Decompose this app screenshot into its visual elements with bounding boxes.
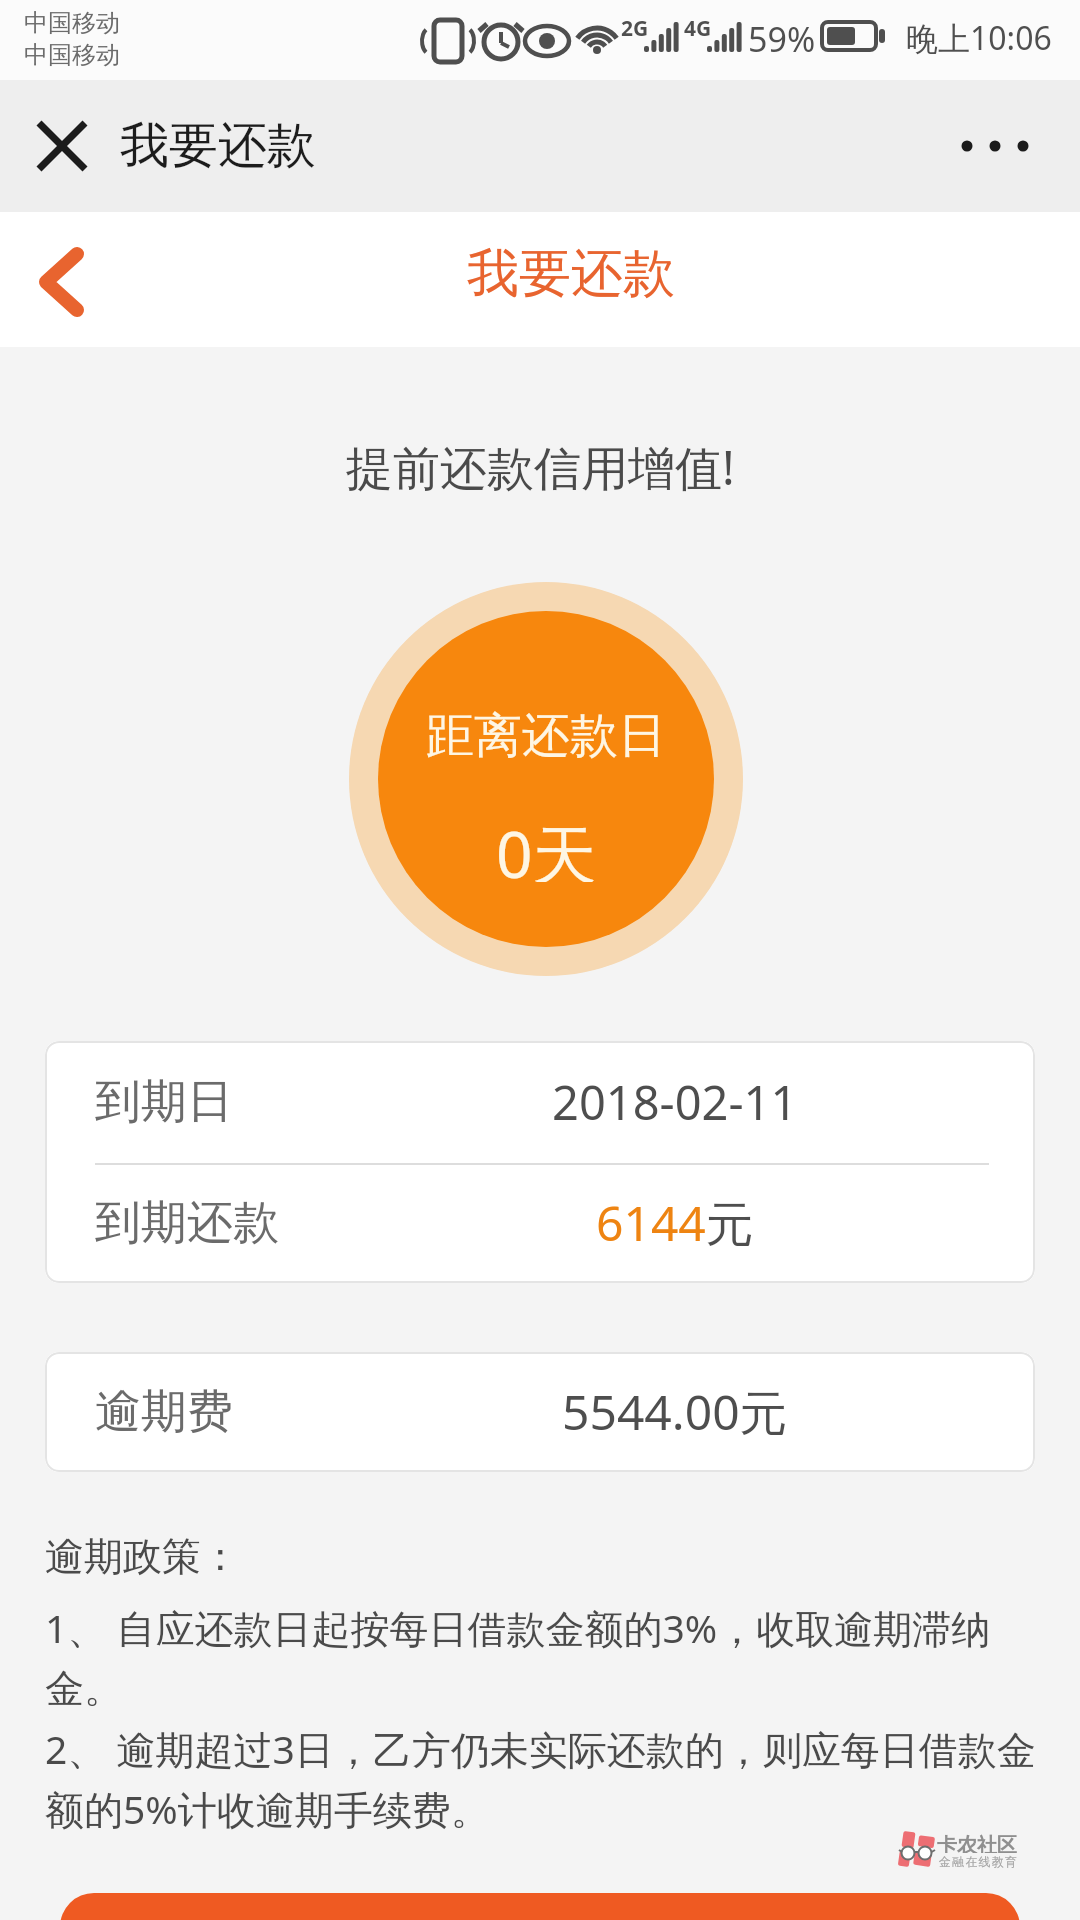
staticText: 额的5%计收逾期手续费。 [45, 1782, 490, 1835]
staticText: 2018-02-11 [552, 1070, 798, 1134]
staticText: 6144元 [596, 1190, 754, 1256]
staticText: 晚上10:06 [906, 16, 1052, 56]
button[interactable] [60, 1893, 1020, 1920]
staticText: 我要还款 [467, 241, 675, 307]
staticText: 金融在线教育 [939, 1854, 1019, 1869]
staticText: 2G [621, 14, 649, 38]
button[interactable] [26, 248, 94, 316]
staticText: 我要还款 [120, 115, 316, 177]
staticText: 5544.00元 [562, 1379, 788, 1445]
staticText: 0天 [496, 810, 597, 882]
button[interactable] [378, 611, 714, 947]
staticText: 卡农社区 [937, 1833, 1017, 1853]
staticText: 到期还款 [95, 1194, 279, 1252]
staticText: 4G [684, 14, 712, 38]
staticText: 逾期费 [95, 1383, 233, 1441]
staticText: 到期日 [95, 1073, 233, 1131]
staticText: 中国移动 [24, 40, 120, 70]
staticText: 距离还款日 [426, 706, 666, 766]
staticText: 2、 逾期超过3日，乙方仍未实际还款的，则应每日借款金 [45, 1722, 1036, 1775]
staticText: 提前还款信用增值! [346, 435, 735, 499]
staticText: 1、 自应还款日起按每日借款金额的3%，收取逾期滞纳 [45, 1601, 991, 1654]
staticText: 逾期政策： [45, 1532, 240, 1581]
button[interactable] [940, 113, 1050, 179]
staticText: 金。 [45, 1664, 123, 1713]
staticText: 中国移动 [24, 8, 120, 38]
staticText: 59% [748, 16, 816, 56]
button[interactable] [28, 112, 96, 180]
